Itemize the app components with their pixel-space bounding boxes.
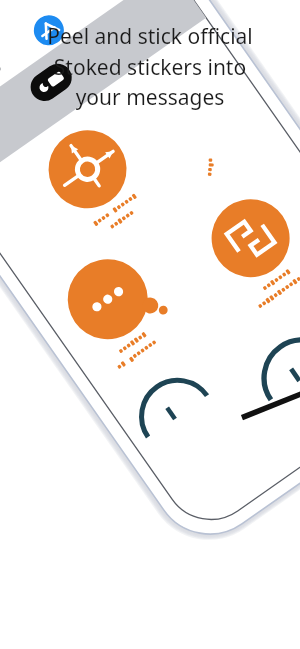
button[interactable]: Peel and stick official Stoked stickers …	[16, 22, 284, 111]
staticText: Peel and stick official Stoked stickers …	[47, 22, 253, 111]
